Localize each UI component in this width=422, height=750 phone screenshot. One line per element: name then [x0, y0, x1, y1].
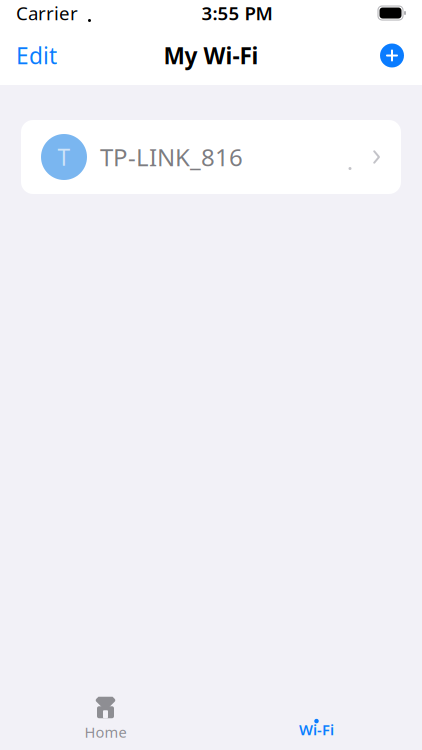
staticText: 3:55 PM [201, 1, 272, 25]
staticText: TP-LINK_816 [100, 141, 243, 173]
button[interactable]: Edit [0, 33, 73, 77]
staticText: Home [84, 722, 126, 742]
button[interactable]: T [21, 120, 401, 194]
staticText: My Wi-Fi [163, 40, 258, 70]
button[interactable]: Home [45, 695, 165, 743]
staticText: T [57, 142, 70, 172]
staticText: Edit [16, 40, 57, 70]
button[interactable]: Wi-Fi [256, 695, 376, 743]
staticText: Carrier [16, 1, 78, 25]
staticText: Wi-Fi [299, 720, 334, 739]
button[interactable]: Add network [370, 33, 422, 77]
